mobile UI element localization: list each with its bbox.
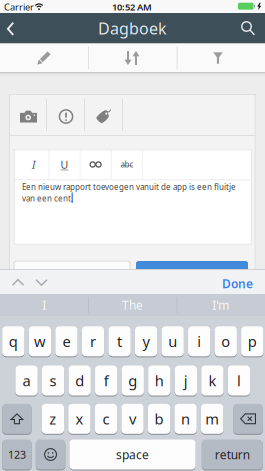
staticText: return <box>215 446 250 462</box>
staticText: 10:52 AM <box>112 1 152 13</box>
button[interactable]: i <box>188 326 210 357</box>
button[interactable]: I'm <box>177 294 265 316</box>
button[interactable]: space <box>69 439 196 470</box>
staticText: m <box>205 409 219 429</box>
staticText: g <box>128 371 137 390</box>
staticText: l <box>237 371 241 390</box>
staticText: space <box>116 446 149 462</box>
button[interactable]: k <box>201 365 224 396</box>
button[interactable]: w <box>29 326 51 357</box>
button[interactable]: s <box>42 365 64 396</box>
staticText: U <box>60 157 68 172</box>
staticText: u <box>168 332 177 351</box>
staticText: q <box>9 332 18 351</box>
button[interactable]: Edit <box>0 43 88 72</box>
button[interactable]: Shift <box>2 403 32 434</box>
button[interactable]: n <box>174 403 197 434</box>
staticText: c <box>102 409 109 429</box>
button[interactable]: q <box>2 326 24 357</box>
button[interactable]: j <box>175 365 197 396</box>
staticText: p <box>248 332 257 351</box>
button[interactable]: Next field <box>28 269 54 294</box>
staticText: van een cent. <box>22 193 73 204</box>
button[interactable]: c <box>95 403 117 434</box>
button[interactable]: m <box>201 403 223 434</box>
button[interactable]: Priority <box>46 94 84 135</box>
button[interactable]: e <box>55 326 78 357</box>
staticText: s <box>50 371 57 390</box>
staticText: j <box>184 371 188 390</box>
button[interactable]: p <box>241 326 263 357</box>
button[interactable]: Back <box>0 13 28 43</box>
staticText: w <box>34 332 46 351</box>
button[interactable]: return <box>202 439 263 470</box>
button[interactable]: Emoji <box>36 439 65 470</box>
button[interactable]: Cancel <box>14 261 130 273</box>
button[interactable]: y <box>135 326 157 357</box>
button[interactable]: Done <box>212 269 265 294</box>
button[interactable]: l <box>228 365 250 396</box>
staticText: abc <box>120 159 133 170</box>
staticText: Done <box>222 275 253 291</box>
staticText: k <box>208 371 216 390</box>
staticText: f <box>104 371 109 390</box>
staticText: n <box>181 409 190 429</box>
staticText: The <box>122 297 143 313</box>
button[interactable]: d <box>68 365 91 396</box>
button[interactable]: Search <box>234 13 265 43</box>
staticText: i <box>197 332 201 351</box>
button[interactable]: Add photo <box>9 94 46 135</box>
button[interactable]: Link <box>80 150 111 179</box>
staticText: y <box>143 332 150 351</box>
button[interactable]: b <box>148 403 170 434</box>
staticText: I <box>42 297 46 313</box>
staticText: Dagboek <box>98 18 167 39</box>
button[interactable]: Delete <box>233 403 263 434</box>
staticText: Carrier <box>4 1 34 13</box>
button[interactable]: a <box>15 365 38 396</box>
staticText: t <box>117 332 122 351</box>
button[interactable]: r <box>82 326 104 357</box>
button[interactable]: g <box>122 365 144 396</box>
staticText: d <box>75 371 84 390</box>
staticText: b <box>155 409 164 429</box>
staticText: r <box>90 332 96 351</box>
staticText: h <box>155 371 164 390</box>
button[interactable]: Underline <box>48 150 80 179</box>
button[interactable]: h <box>148 365 170 396</box>
button[interactable]: The <box>88 294 177 316</box>
staticText: e <box>62 332 70 351</box>
staticText: z <box>49 409 56 429</box>
button[interactable]: f <box>95 365 117 396</box>
staticText: I'm <box>212 297 229 313</box>
button[interactable]: 123 <box>2 439 32 470</box>
button[interactable]: Strikethrough <box>111 150 142 179</box>
staticText: I <box>32 157 35 172</box>
staticText: Een nieuw rapport toevoegen vanuit de ap… <box>22 182 236 192</box>
button[interactable]: o <box>215 326 237 357</box>
button[interactable]: Save <box>136 261 248 273</box>
button[interactable]: u <box>161 326 184 357</box>
button[interactable]: Sort <box>88 43 177 72</box>
button[interactable]: I <box>0 294 88 316</box>
staticText: o <box>221 332 230 351</box>
staticText: 123 <box>8 447 26 462</box>
button[interactable]: v <box>121 403 144 434</box>
button[interactable]: Filter <box>177 43 265 72</box>
staticText: v <box>129 409 136 429</box>
staticText: x <box>75 409 83 429</box>
button[interactable]: Italic <box>14 150 48 179</box>
button[interactable]: x <box>68 403 90 434</box>
button[interactable]: Previous field <box>4 269 30 294</box>
button[interactable]: Tags <box>84 94 122 135</box>
button[interactable]: t <box>108 326 131 357</box>
button[interactable]: z <box>42 403 64 434</box>
staticText: a <box>23 371 31 390</box>
